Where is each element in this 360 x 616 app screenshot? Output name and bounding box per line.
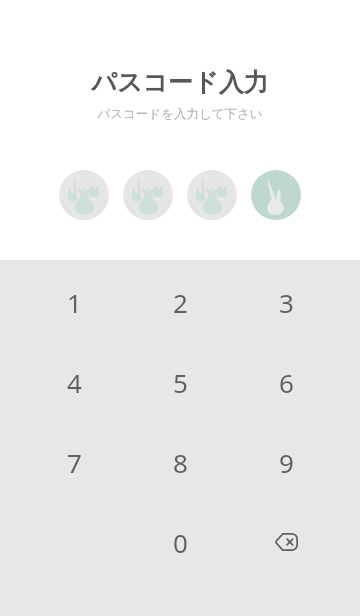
staticText: 1 xyxy=(67,285,82,320)
other: Passcode digit empty xyxy=(123,170,173,220)
button[interactable]: 0 xyxy=(127,502,233,582)
button[interactable]: 2 xyxy=(127,262,233,342)
button[interactable]: 5 xyxy=(127,342,233,422)
button[interactable]: 8 xyxy=(127,422,233,502)
staticText: 7 xyxy=(67,445,82,480)
staticText: 3 xyxy=(279,285,294,320)
button[interactable]: 4 xyxy=(21,342,127,422)
staticText: 9 xyxy=(279,445,294,480)
staticText: パスコードを入力して下さい xyxy=(97,106,263,122)
other: Passcode digit empty xyxy=(187,170,237,220)
button[interactable]: 6 xyxy=(233,342,339,422)
staticText: 2 xyxy=(173,285,188,320)
button[interactable]: 9 xyxy=(233,422,339,502)
staticText: 6 xyxy=(279,365,294,400)
other: Delete xyxy=(274,533,298,551)
button[interactable]: 3 xyxy=(233,262,339,342)
button[interactable]: Delete xyxy=(233,502,339,582)
staticText: 8 xyxy=(173,445,188,480)
other: Passcode digit entered xyxy=(251,170,301,220)
button[interactable]: 1 xyxy=(21,262,127,342)
staticText: 4 xyxy=(67,365,82,400)
staticText: 5 xyxy=(173,365,188,400)
staticText: 0 xyxy=(173,525,188,560)
other: Passcode digit empty xyxy=(59,170,109,220)
staticText: パスコード入力 xyxy=(91,67,269,98)
button[interactable]: 7 xyxy=(21,422,127,502)
